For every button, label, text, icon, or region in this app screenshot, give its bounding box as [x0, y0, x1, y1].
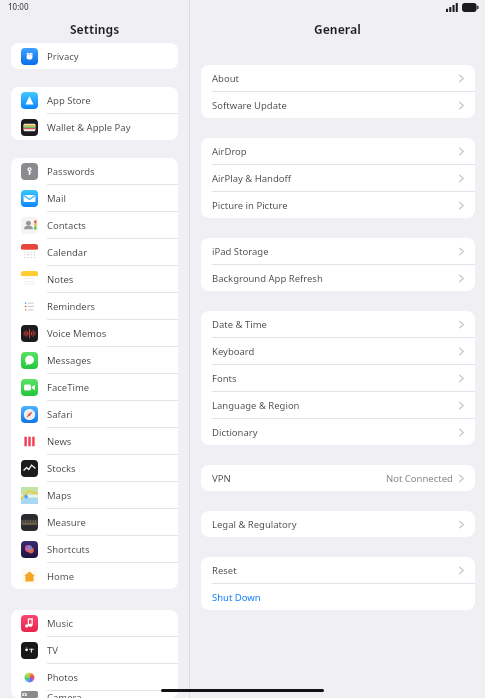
staticText: Language & Region [212, 399, 300, 412]
button[interactable]: App Store [11, 87, 178, 113]
staticText: Contacts [47, 219, 86, 232]
staticText: Music [47, 617, 74, 630]
button[interactable]: Reset [201, 557, 475, 583]
staticText: Wallet & Apple Pay [47, 121, 131, 134]
staticText: Not Connected [386, 472, 453, 485]
button[interactable]: Language & Region [201, 392, 475, 418]
button[interactable]: AirDrop [201, 138, 475, 164]
staticText: Keyboard [212, 345, 255, 358]
staticText: Fonts [212, 372, 237, 385]
button[interactable]: Stocks [11, 455, 178, 481]
staticText: Home [47, 570, 75, 583]
button[interactable]: Safari [11, 401, 178, 427]
other: Battery [462, 3, 479, 12]
staticText: AirPlay & Handoff [212, 172, 292, 185]
button[interactable]: Software Update [201, 92, 475, 118]
staticText: Safari [47, 408, 73, 421]
button[interactable]: Shortcuts [11, 536, 178, 562]
button[interactable]: VPN [201, 465, 475, 491]
staticText: 10:00 [8, 1, 29, 12]
staticText: Camera [47, 691, 82, 698]
button[interactable]: Keyboard [201, 338, 475, 364]
button[interactable]: Background App Refresh [201, 265, 475, 291]
button[interactable]: Contacts [11, 212, 178, 238]
button[interactable]: Home [11, 563, 178, 589]
staticText: Software Update [212, 99, 287, 112]
button[interactable]: Photos [11, 664, 178, 690]
staticText: AirDrop [212, 145, 247, 158]
button[interactable]: TV [11, 637, 178, 663]
staticText: About [212, 72, 239, 85]
button[interactable]: Camera [11, 691, 178, 698]
button[interactable]: Date & Time [201, 311, 475, 337]
button[interactable]: Messages [11, 347, 178, 373]
button[interactable]: Notes [11, 266, 178, 292]
staticText: Dictionary [212, 426, 258, 439]
button[interactable]: Maps [11, 482, 178, 508]
button[interactable]: FaceTime [11, 374, 178, 400]
staticText: Privacy [47, 50, 79, 63]
staticText: FaceTime [47, 381, 90, 394]
staticText: App Store [47, 94, 91, 107]
staticText: Calendar [47, 246, 88, 259]
staticText: Reset [212, 564, 237, 577]
staticText: Reminders [47, 300, 96, 313]
staticText: Settings [70, 21, 120, 37]
staticText: Voice Memos [47, 327, 107, 340]
button[interactable]: Picture in Picture [201, 192, 475, 218]
staticText: Picture in Picture [212, 199, 288, 212]
button[interactable]: Wallet & Apple Pay [11, 114, 178, 140]
button[interactable]: Music [11, 610, 178, 636]
staticText: Messages [47, 354, 92, 367]
staticText: Shut Down [212, 591, 261, 604]
button[interactable]: Fonts [201, 365, 475, 391]
staticText: VPN [212, 472, 231, 485]
staticText: Photos [47, 671, 79, 684]
staticText: Legal & Regulatory [212, 518, 297, 531]
button[interactable]: iPad Storage [201, 238, 475, 264]
button[interactable]: Reminders [11, 293, 178, 319]
button[interactable]: Passwords [11, 158, 178, 184]
staticText: Measure [47, 516, 86, 529]
button[interactable]: AirPlay & Handoff [201, 165, 475, 191]
staticText: iPad Storage [212, 245, 269, 258]
staticText: Notes [47, 273, 74, 286]
staticText: News [47, 435, 72, 448]
other: Cellular signal [446, 3, 459, 12]
staticText: TV [47, 644, 58, 657]
staticText: Background App Refresh [212, 272, 323, 285]
button[interactable]: Voice Memos [11, 320, 178, 346]
button[interactable]: Legal & Regulatory [201, 511, 475, 537]
staticText: Passwords [47, 165, 95, 178]
staticText: Maps [47, 489, 72, 502]
button[interactable]: Dictionary [201, 419, 475, 445]
button[interactable]: Shut Down [201, 584, 475, 610]
staticText: Mail [47, 192, 66, 205]
button[interactable]: News [11, 428, 178, 454]
button[interactable]: Calendar [11, 239, 178, 265]
staticText: Date & Time [212, 318, 267, 331]
button[interactable]: Mail [11, 185, 178, 211]
button[interactable]: Measure [11, 509, 178, 535]
staticText: Stocks [47, 462, 76, 475]
button[interactable]: About [201, 65, 475, 91]
staticText: General [314, 21, 361, 37]
staticText: Shortcuts [47, 543, 90, 556]
button[interactable]: Privacy [11, 43, 178, 69]
